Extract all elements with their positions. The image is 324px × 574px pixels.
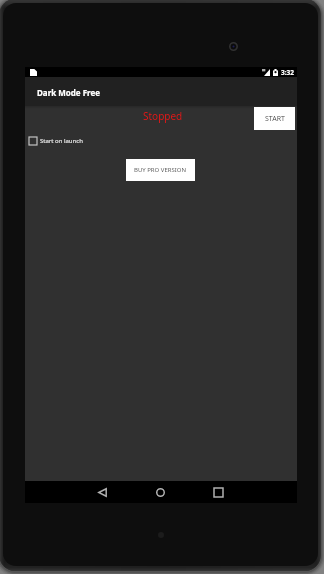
- button[interactable]: Recent apps: [203, 481, 234, 503]
- button[interactable]: START: [254, 107, 295, 130]
- staticText: START: [265, 114, 285, 124]
- button[interactable]: Home: [145, 481, 176, 503]
- staticText: Dark Mode Free: [37, 87, 101, 98]
- staticText: 3:32: [281, 68, 294, 77]
- staticText: BUY PRO VERSION: [134, 166, 187, 174]
- button[interactable]: Start on launch: [29, 137, 83, 145]
- button[interactable]: BUY PRO VERSION: [126, 159, 195, 181]
- staticText: Start on launch: [40, 137, 83, 145]
- staticText: Stopped: [143, 109, 183, 123]
- button[interactable]: Back: [87, 481, 118, 503]
